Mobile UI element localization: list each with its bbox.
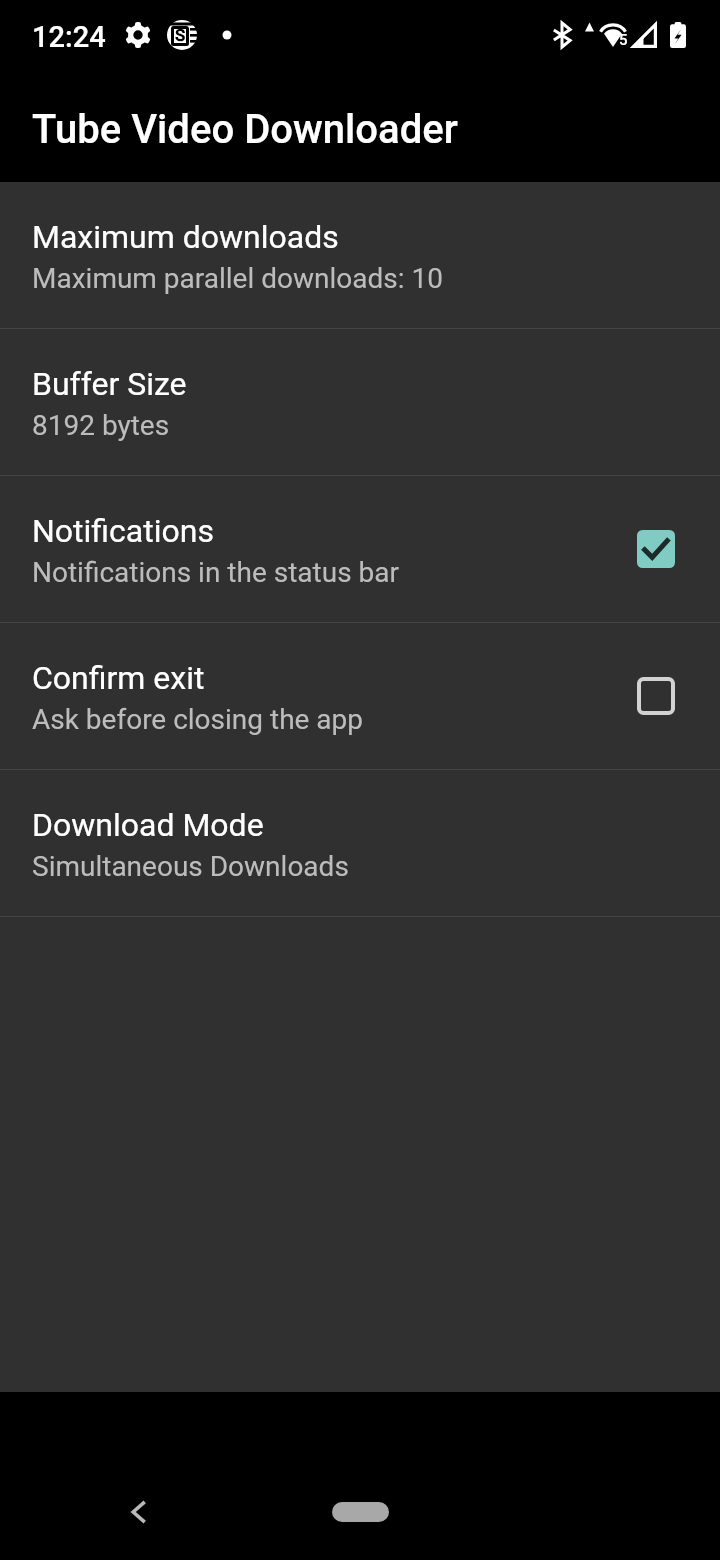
- staticText: Confirm exit: [32, 659, 205, 697]
- staticText: Simultaneous Downloads: [32, 850, 349, 883]
- staticText: Maximum downloads: [32, 218, 339, 256]
- button[interactable]: Home: [332, 1502, 389, 1522]
- button[interactable]: Maximum downloads: [0, 182, 720, 328]
- button[interactable]: Download Mode: [0, 770, 720, 916]
- button[interactable]: Notifications: [0, 476, 720, 622]
- staticText: Buffer Size: [32, 365, 187, 403]
- staticText: 12:24: [32, 20, 106, 54]
- button[interactable]: Confirm exit: [0, 623, 720, 769]
- staticText: S: [175, 25, 186, 45]
- staticText: 8192 bytes: [32, 409, 170, 442]
- staticText: 5: [619, 31, 628, 49]
- button[interactable]: Buffer Size: [0, 329, 720, 475]
- staticText: Notifications in the status bar: [32, 556, 399, 589]
- staticText: Tube Video Downloader: [32, 106, 458, 153]
- staticText: Download Mode: [32, 806, 264, 844]
- button[interactable]: Checked: [608, 501, 704, 597]
- staticText: Notifications: [32, 512, 214, 550]
- button[interactable]: Back: [98, 1472, 178, 1552]
- button[interactable]: Unchecked: [608, 648, 704, 744]
- staticText: Maximum parallel downloads: 10: [32, 262, 443, 295]
- staticText: Ask before closing the app: [32, 703, 364, 736]
